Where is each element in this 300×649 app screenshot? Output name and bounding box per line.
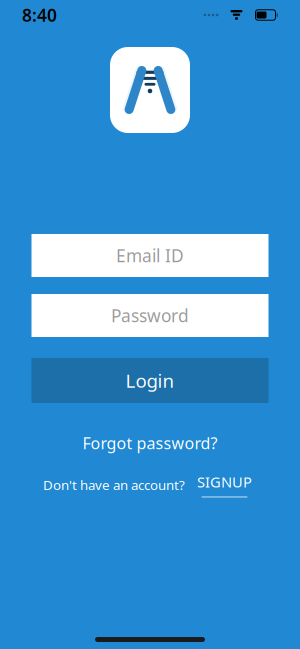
staticText: SIGNUP (197, 472, 252, 491)
staticText: 8:40 (22, 3, 57, 26)
button[interactable]: SIGNUP (193, 472, 256, 497)
staticText: Password (111, 304, 189, 327)
staticText: Email ID (116, 244, 184, 267)
staticText: Don't have an account? (43, 476, 185, 494)
button[interactable]: Email ID (31, 234, 268, 277)
button[interactable]: Password (31, 294, 268, 337)
staticText: Forgot password? (82, 432, 217, 454)
staticText: Login (125, 368, 174, 393)
button[interactable]: Login (31, 358, 268, 403)
button[interactable]: Forgot password? (31, 433, 268, 453)
